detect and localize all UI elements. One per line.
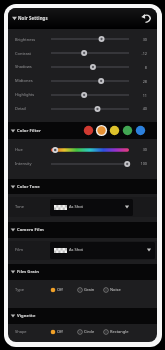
staticText: 30 [127,147,147,342]
staticText: Off [57,287,63,292]
staticText: Tone [15,204,25,209]
button[interactable] [8,143,157,157]
button[interactable] [8,308,157,324]
button[interactable]: Reset settings [140,12,153,25]
staticText: Off [57,329,63,334]
staticText: 11 [127,93,147,342]
button[interactable] [8,122,157,139]
staticText: 8 [127,65,147,342]
button[interactable] [8,102,157,116]
button[interactable] [8,264,157,280]
button[interactable] [8,8,157,29]
button[interactable] [8,179,157,194]
button[interactable]: Filter colour 2 [95,124,108,137]
staticText: Color Filter [17,128,42,134]
staticText: Vignette [17,313,36,319]
staticText: Film [15,247,23,252]
button[interactable] [102,326,136,337]
staticText: Intensity [15,161,32,166]
button[interactable]: Filter colour 4 [121,124,134,137]
staticText: Noise [110,287,121,292]
staticText: Contrast [15,51,32,56]
button[interactable] [8,222,157,238]
staticText: Type [15,287,24,292]
staticText: 30 [127,37,147,342]
staticText: Shadows [15,64,32,69]
staticText: 40 [127,106,147,342]
staticText: Camera Film [17,227,44,233]
button[interactable] [8,74,157,88]
staticText: Brightness [15,37,36,42]
button[interactable]: Filter colour 5 [134,124,147,137]
button[interactable] [8,60,157,74]
button[interactable] [76,284,102,295]
staticText: Rectangle [110,329,129,334]
staticText: Hue [15,147,23,152]
staticText: Circle [84,329,95,334]
staticText: Midtones [15,78,33,83]
button[interactable]: Filter colour 3 [108,124,121,137]
staticText: -12 [127,51,147,342]
button[interactable] [49,326,71,337]
button[interactable] [8,241,157,260]
staticText: As Shot [69,247,84,252]
button[interactable]: Filter colour 1 [82,124,95,137]
staticText: Noir Settings [18,15,48,21]
button[interactable] [8,157,157,171]
staticText: Grain [84,287,95,292]
staticText: Detail [15,106,26,111]
button[interactable] [50,242,155,259]
staticText: As Shot [69,204,84,209]
staticText: Shape [15,329,27,334]
button[interactable] [8,197,157,217]
button[interactable] [50,199,133,216]
staticText: Film Grain [17,269,39,275]
staticText: Highlights [15,92,35,97]
button[interactable] [8,88,157,102]
staticText: Color Tone [17,184,40,190]
button[interactable] [8,32,157,46]
button[interactable] [49,284,71,295]
button[interactable] [8,46,157,60]
button[interactable] [102,284,136,295]
staticText: 28 [127,79,147,342]
button[interactable] [76,326,102,337]
staticText: 100 [127,161,147,342]
